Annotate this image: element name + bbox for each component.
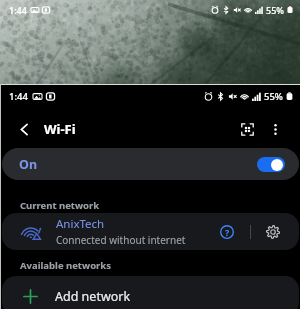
staticText: Wi-Fi: [44, 120, 76, 138]
staticText: On: [19, 156, 38, 173]
button[interactable]: On: [2, 148, 299, 180]
staticText: Available networks: [20, 259, 111, 272]
button[interactable]: Back: [12, 117, 36, 141]
staticText: 1:44: [9, 90, 28, 103]
staticText: Add network: [55, 288, 131, 305]
staticText: ?: [225, 226, 230, 238]
button[interactable]: Network settings: [262, 221, 284, 243]
button[interactable]: Scan QR code: [234, 116, 260, 142]
staticText: 55%: [266, 4, 284, 16]
staticText: Connected without internet: [56, 233, 186, 247]
staticText: Current network: [20, 199, 100, 212]
staticText: 1:44: [9, 4, 27, 16]
button[interactable]: Help: [216, 221, 238, 243]
button[interactable]: AnixTech: [2, 213, 299, 250]
staticText: AnixTech: [56, 216, 105, 232]
staticText: 55%: [264, 90, 283, 103]
button[interactable]: More options: [264, 118, 286, 140]
button[interactable]: Add network: [2, 276, 299, 309]
